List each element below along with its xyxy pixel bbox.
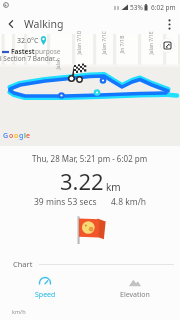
staticText: km xyxy=(106,180,121,194)
staticText: km/h xyxy=(12,308,26,315)
staticText: Jalan xyxy=(54,57,61,69)
staticText: Chart xyxy=(13,259,33,269)
staticText: Speed xyxy=(35,290,56,300)
button[interactable]: Back xyxy=(0,14,22,34)
staticText: 53% xyxy=(130,3,143,12)
staticText: Elevation xyxy=(120,290,150,300)
staticText: g xyxy=(19,131,24,141)
button[interactable]: More options xyxy=(158,14,180,34)
button[interactable]: Expand map xyxy=(160,38,175,53)
staticText: G xyxy=(3,131,9,141)
button[interactable]: Elevation xyxy=(90,276,180,300)
staticText: 6:02 pm xyxy=(151,3,176,12)
staticText: 32.0°C xyxy=(17,36,39,46)
staticText: l xyxy=(24,131,26,141)
staticText: o xyxy=(14,131,19,141)
staticText: 3.22 xyxy=(60,166,104,196)
staticText: Walking xyxy=(24,17,64,31)
staticText: Fastest xyxy=(11,47,35,56)
staticText: purpose xyxy=(35,47,61,56)
staticText: Thu, 28 Mar, 5:21 pm - 6:02 pm xyxy=(32,153,148,164)
staticText: 39 mins 53 secs xyxy=(34,196,97,208)
staticText: e xyxy=(26,131,31,141)
staticText: 4.8 km/h xyxy=(111,196,147,208)
staticText: o xyxy=(9,131,14,141)
staticText: Jalan 7/1E xyxy=(147,30,154,54)
staticText: Jln 7/1B xyxy=(118,35,125,53)
staticText: Jalan 7/1D xyxy=(75,30,82,54)
staticText: Jalan 7/1C xyxy=(100,30,107,54)
button[interactable]: Speed xyxy=(0,276,90,300)
staticText: l Section 7 Bandar... xyxy=(0,54,60,63)
